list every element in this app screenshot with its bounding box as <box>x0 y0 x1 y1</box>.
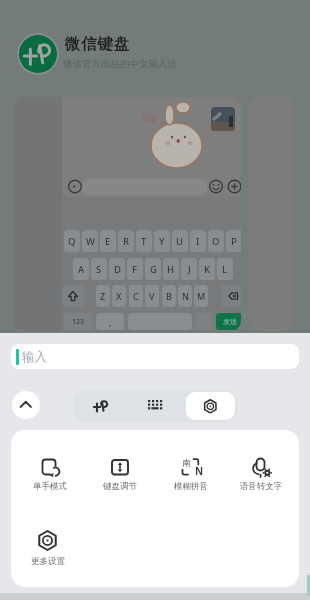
staticText: F <box>132 263 138 276</box>
staticText: S <box>96 263 102 276</box>
staticText: E <box>105 235 111 248</box>
button[interactable] <box>186 392 235 420</box>
staticText: Y <box>159 235 165 248</box>
staticText: C <box>133 290 139 302</box>
staticText: 单手模式 <box>15 481 85 492</box>
staticText: 123 <box>72 317 85 327</box>
staticText: 南 <box>182 457 191 468</box>
staticText: N <box>195 464 204 478</box>
staticText: , <box>109 316 112 328</box>
button[interactable] <box>85 448 155 500</box>
button[interactable] <box>12 391 40 419</box>
button[interactable] <box>226 448 296 500</box>
staticText: O <box>212 235 220 248</box>
staticText: B <box>166 290 172 302</box>
staticText: L <box>222 263 228 276</box>
staticText: W <box>86 235 95 248</box>
staticText: D <box>114 263 121 276</box>
staticText: 输入 <box>22 349 47 365</box>
staticText: V <box>149 290 155 302</box>
staticText: 微信官方出品的中文输入法 <box>63 58 177 70</box>
button[interactable] <box>75 392 125 420</box>
staticText: X <box>116 290 122 302</box>
staticText: A <box>78 263 85 276</box>
staticText: 键盘调节 <box>85 481 155 492</box>
staticText: 更多设置 <box>13 556 83 567</box>
staticText: M <box>197 290 206 302</box>
staticText: N <box>182 290 189 302</box>
staticText: 发送 <box>223 317 237 326</box>
button[interactable] <box>11 344 299 369</box>
button[interactable] <box>130 392 180 420</box>
staticText: P <box>231 235 237 248</box>
staticText: K <box>204 263 211 276</box>
staticText: Z <box>100 290 106 302</box>
staticText: I <box>196 235 200 248</box>
staticText: 微信键盘 <box>64 34 130 54</box>
staticText: 语音转文字 <box>226 481 296 492</box>
staticText: 加油 <box>141 113 157 123</box>
staticText: G <box>150 263 157 276</box>
staticText: 模糊拼音 <box>156 481 226 492</box>
staticText: U <box>176 235 184 248</box>
staticText: Q <box>68 235 76 248</box>
staticText: T <box>141 235 147 248</box>
staticText: R <box>123 235 130 248</box>
button[interactable] <box>156 448 226 500</box>
staticText: J <box>188 263 191 276</box>
button[interactable] <box>15 520 85 572</box>
button[interactable] <box>15 448 85 500</box>
staticText: H <box>167 263 175 276</box>
